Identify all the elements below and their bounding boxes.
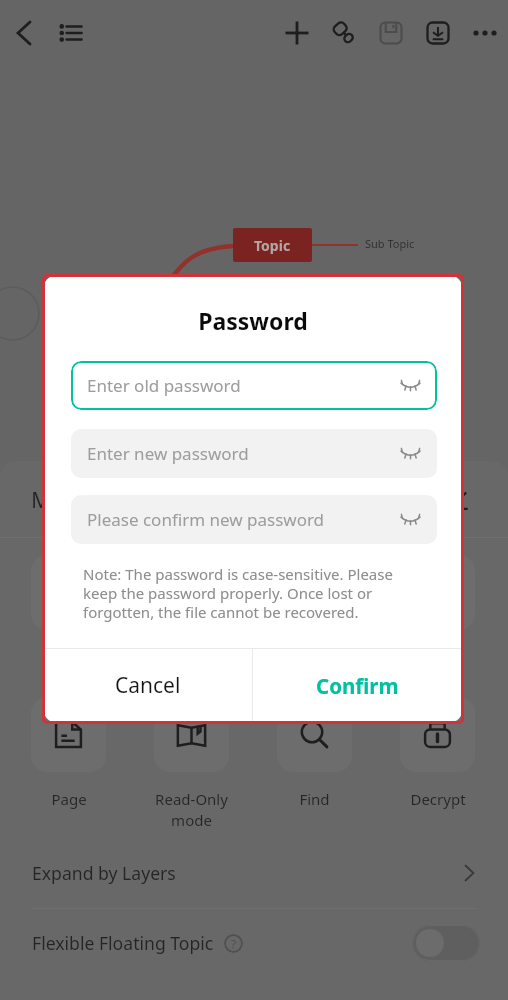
- button[interactable]: Show password: [397, 441, 423, 467]
- button[interactable]: Toggle: [412, 925, 480, 961]
- button[interactable]: Save: [367, 9, 414, 56]
- button[interactable]: Show password: [397, 373, 423, 399]
- button[interactable]: Cancel: [44, 649, 252, 722]
- staticText: Confirm: [316, 672, 399, 700]
- button[interactable]: Save as: [277, 555, 352, 667]
- button[interactable]: Decrypt: [400, 697, 475, 809]
- staticText: Page: [51, 789, 87, 809]
- button[interactable]: Page: [31, 697, 106, 809]
- button[interactable]: Enter new password: [71, 429, 437, 478]
- staticText: Cancel: [115, 671, 181, 700]
- staticText: Share: [48, 647, 89, 667]
- button[interactable]: Enter old password: [71, 361, 437, 410]
- staticText: Expand by Layers: [32, 861, 176, 885]
- staticText: Read-Only mode: [155, 789, 228, 831]
- staticText: Find: [299, 789, 330, 809]
- button[interactable]: Please confirm new password: [71, 495, 437, 544]
- button[interactable]: Add: [273, 9, 320, 56]
- button[interactable]: Outline: [47, 9, 94, 56]
- button[interactable]: Export: [414, 9, 461, 56]
- staticText: Sub Topic: [365, 236, 415, 251]
- staticText: Send a Copy: [154, 647, 229, 689]
- staticText: Flexible Floating Topic: [32, 931, 214, 955]
- button[interactable]: Back: [0, 9, 47, 56]
- staticText: ?: [231, 936, 237, 952]
- staticText: Enter old password: [87, 374, 241, 397]
- staticText: Topic: [254, 236, 291, 255]
- staticText: Password: [44, 305, 462, 336]
- button[interactable]: Share: [31, 555, 106, 667]
- button[interactable]: More: [461, 9, 508, 56]
- staticText: Decrypt: [410, 789, 466, 809]
- button[interactable]: Flexible Floating Topic: [0, 907, 508, 979]
- button[interactable]: Print: [400, 555, 475, 667]
- staticText: Mind Map: [31, 484, 136, 514]
- staticText: Save as: [288, 647, 341, 667]
- button[interactable]: Expand by Layers: [0, 837, 508, 909]
- button[interactable]: Style: [320, 9, 367, 56]
- button[interactable]: Send a Copy: [154, 555, 229, 689]
- staticText: Enter new password: [87, 442, 249, 465]
- staticText: Note: The password is case-sensitive. Pl…: [83, 564, 428, 622]
- button[interactable]: Rename: [443, 482, 477, 516]
- button[interactable]: Find: [277, 697, 352, 809]
- button[interactable]: Confirm: [253, 649, 462, 722]
- button[interactable]: Show password: [397, 507, 423, 533]
- staticText: Please confirm new password: [87, 508, 325, 531]
- staticText: Print: [421, 647, 455, 667]
- button[interactable]: Read-Only mode: [154, 697, 229, 831]
